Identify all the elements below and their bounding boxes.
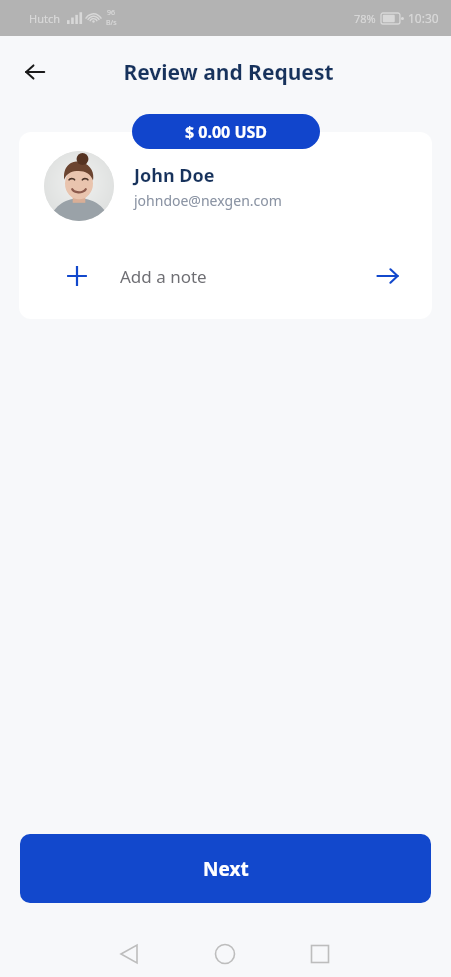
staticText: johndoe@nexgen.com — [134, 191, 282, 210]
button[interactable]: $ 0.00 USD — [132, 114, 320, 149]
staticText: Review and Request — [123, 58, 334, 87]
button[interactable]: Next — [20, 834, 431, 903]
staticText: John Doe — [134, 163, 215, 188]
staticText: Hutch — [29, 11, 60, 26]
staticText: Next — [203, 856, 249, 882]
staticText: $ 0.00 USD — [185, 121, 268, 143]
staticText: B/s — [106, 18, 117, 28]
button[interactable]: Add a note — [19, 252, 432, 300]
staticText: 78% — [354, 11, 376, 26]
staticText: Add a note — [120, 265, 207, 288]
staticText: 10:30 — [408, 10, 439, 26]
staticText: 96 — [107, 8, 116, 18]
button[interactable]: Back — [14, 51, 56, 93]
button[interactable]: John Doe — [44, 151, 432, 221]
